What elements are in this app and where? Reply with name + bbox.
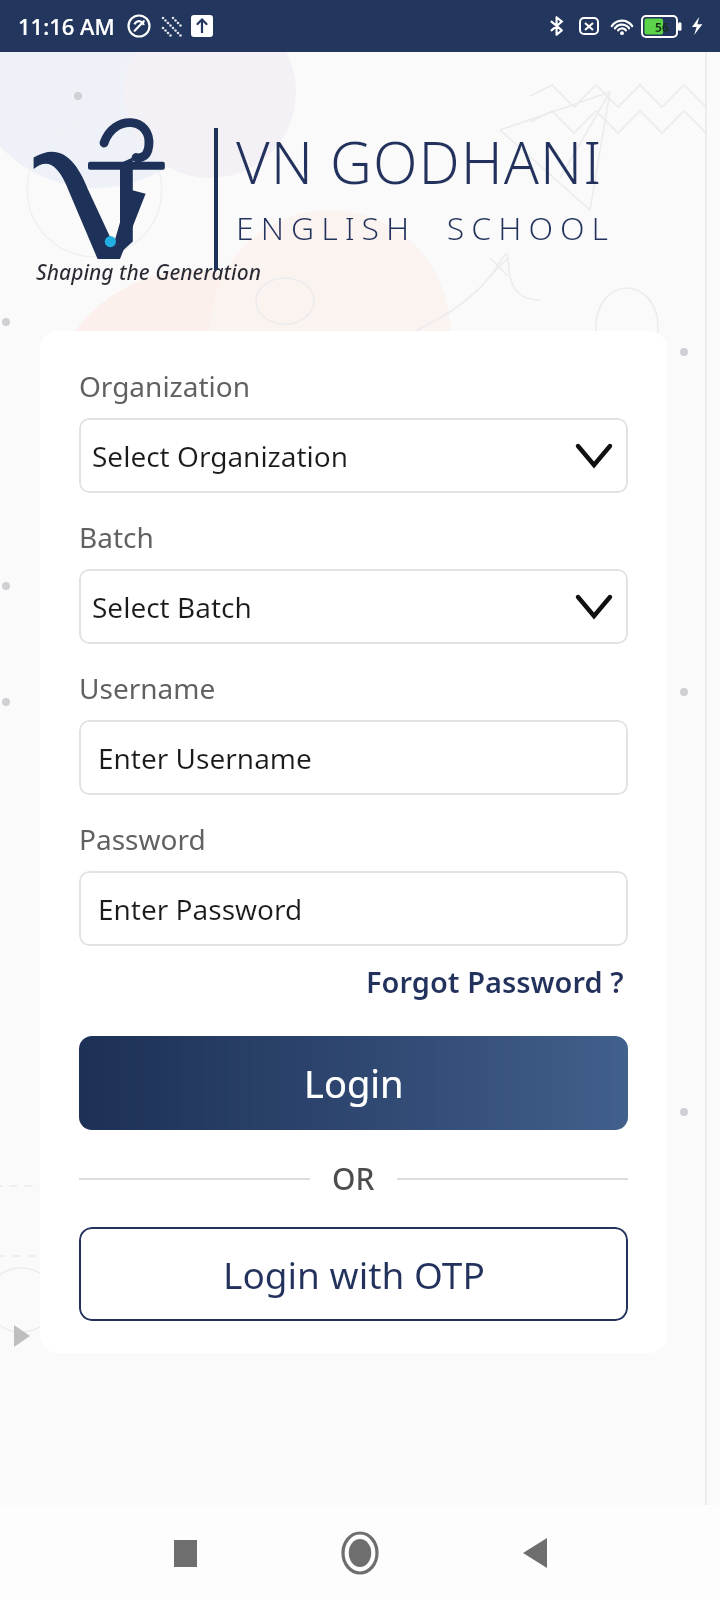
staticText: ENGLISH SCHOOL	[236, 206, 615, 250]
staticText: Username	[79, 669, 216, 707]
button[interactable]: Home	[329, 1522, 391, 1584]
staticText: Enter Username	[98, 739, 312, 777]
staticText: Organization	[79, 367, 251, 405]
staticText: Password	[79, 820, 206, 858]
button[interactable]: Recent apps	[157, 1525, 213, 1581]
staticText: Select Organization	[92, 437, 349, 475]
staticText: Shaping the Generation	[36, 258, 261, 287]
staticText: Select Batch	[92, 588, 252, 626]
staticText: 56	[655, 19, 669, 35]
button[interactable]: Forgot Password ?	[362, 958, 628, 1005]
button[interactable]: Enter Password	[79, 871, 628, 946]
staticText: VN GODHANI	[236, 122, 603, 201]
button[interactable]: Login with OTP	[79, 1227, 628, 1321]
staticText: Forgot Password ?	[366, 962, 624, 1001]
staticText: OR	[332, 1158, 375, 1199]
button[interactable]: Enter Username	[79, 720, 628, 795]
button[interactable]: Select Organization	[79, 418, 628, 493]
staticText: Login with OTP	[223, 1249, 485, 1299]
button[interactable]: Login	[79, 1036, 628, 1130]
button[interactable]: Back	[507, 1525, 563, 1581]
staticText: Batch	[79, 518, 154, 556]
button[interactable]: Select Batch	[79, 569, 628, 644]
staticText: 11:16 AM	[18, 11, 115, 41]
staticText: Enter Password	[98, 890, 303, 928]
staticText: Login	[304, 1057, 404, 1109]
